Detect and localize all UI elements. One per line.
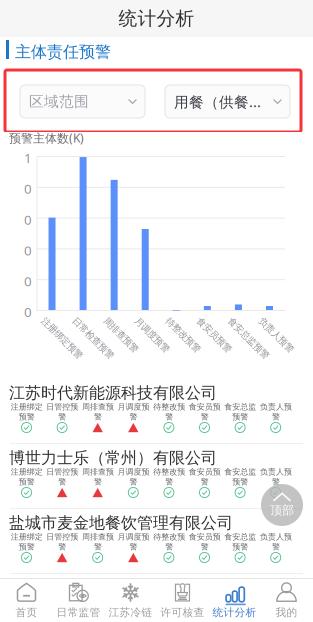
button[interactable]: 博世力士乐（常州）有限公司: [0, 444, 313, 509]
button[interactable]: 回到顶部: [261, 484, 303, 526]
staticText: 周排查预 警: [82, 532, 114, 552]
staticText: 食安员预 警: [188, 467, 220, 487]
staticText: 注册绑定 预警: [10, 467, 42, 487]
staticText: 待整改预 警: [153, 467, 185, 487]
staticText: 预警主体数(K): [9, 130, 84, 146]
button[interactable]: 盐城市麦金地餐饮管理有限公司: [0, 509, 313, 574]
button[interactable]: 许可核查: [156, 580, 208, 621]
staticText: 待整改预 警: [153, 402, 185, 422]
staticText: 周排查预 警: [82, 467, 114, 487]
staticText: 0: [24, 272, 32, 290]
staticText: 我的: [275, 606, 297, 619]
staticText: 日管控预 警: [46, 467, 78, 487]
staticText: 日管控预 警: [46, 532, 78, 552]
staticText: 盐城市麦金地餐饮管理有限公司: [9, 513, 233, 533]
staticText: 0: [24, 303, 32, 321]
staticText: 月调度预 警: [117, 467, 149, 487]
button[interactable]: 江苏冷链: [104, 580, 156, 621]
staticText: 0: [24, 241, 32, 259]
button[interactable]: 江苏时代新能源科技有限公司: [0, 379, 313, 444]
staticText: 0: [24, 180, 32, 197]
button[interactable]: 区域范围: [20, 85, 145, 118]
staticText: 日管控预 警: [46, 402, 78, 422]
staticText: 博世力士乐（常州）有限公司: [9, 448, 217, 468]
staticText: 顶部: [270, 503, 294, 518]
button[interactable]: 日常监管: [52, 580, 104, 621]
staticText: 江苏时代新能源科技有限公司: [9, 383, 217, 403]
staticText: 食安总监 预警: [224, 532, 256, 552]
staticText: 统计分析: [118, 7, 194, 30]
staticText: 月调度预 警: [117, 402, 149, 422]
staticText: 1: [24, 149, 32, 167]
button[interactable]: 用餐（供餐）···: [165, 85, 290, 118]
staticText: 负责人预警: [264, 315, 309, 326]
staticText: 食安员预警: [202, 315, 247, 326]
staticText: 待整改预警: [171, 315, 216, 326]
staticText: 待整改预 警: [153, 532, 185, 552]
staticText: 食安总监预警: [233, 315, 287, 326]
staticText: 主体责任预警: [15, 42, 111, 62]
staticText: 注册绑定 预警: [10, 532, 42, 552]
staticText: 食安员预 警: [188, 402, 220, 422]
staticText: 注册绑定预警: [47, 315, 101, 326]
staticText: 用餐（供餐）···: [174, 92, 271, 111]
staticText: 月调度预 警: [117, 532, 149, 552]
staticText: 注册绑定 预警: [10, 402, 42, 422]
staticText: 区域范围: [29, 92, 89, 110]
staticText: 日常监管: [56, 606, 100, 619]
button[interactable]: 统计分析: [208, 580, 260, 621]
staticText: 食安员预 警: [188, 532, 220, 552]
staticText: 食安总监 预警: [224, 402, 256, 422]
staticText: 月调度预警: [140, 315, 185, 326]
staticText: 首页: [15, 606, 37, 619]
staticText: 负责人预 警: [260, 402, 292, 422]
staticText: 负责人预 警: [260, 532, 292, 552]
staticText: 日常检查预警: [78, 315, 132, 326]
button[interactable]: 我的: [260, 580, 312, 621]
staticText: 统计分析: [212, 606, 256, 619]
staticText: 食安总监 预警: [224, 467, 256, 487]
staticText: 许可核查: [160, 606, 204, 619]
button[interactable]: 首页: [0, 580, 52, 621]
staticText: 江苏冷链: [108, 606, 152, 619]
staticText: 周排查预警: [109, 315, 154, 326]
staticText: 0: [24, 211, 32, 228]
staticText: 负责人预 警: [260, 467, 292, 487]
staticText: 周排查预 警: [82, 402, 114, 422]
